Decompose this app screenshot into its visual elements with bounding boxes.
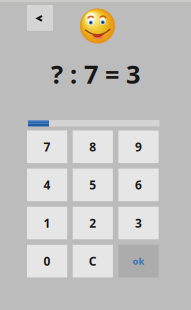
button[interactable]: 9: [118, 130, 159, 163]
staticText: 0: [44, 253, 51, 269]
button[interactable]: 5: [73, 169, 113, 201]
staticText: 2: [89, 215, 96, 231]
button[interactable]: Back: [27, 5, 53, 31]
button[interactable]: 6: [118, 169, 159, 201]
staticText: 3: [135, 215, 142, 231]
staticText: C: [89, 253, 97, 269]
button[interactable]: 7: [27, 130, 67, 163]
button[interactable]: 0: [27, 245, 67, 277]
staticText: 9: [135, 139, 142, 155]
staticText: 7: [44, 139, 51, 155]
button[interactable]: 3: [118, 207, 159, 239]
button[interactable]: 4: [27, 169, 67, 201]
staticText: 6: [135, 177, 142, 193]
button[interactable]: ok: [118, 245, 159, 277]
button[interactable]: 1: [27, 207, 67, 239]
button[interactable]: 8: [73, 130, 113, 163]
staticText: 8: [89, 139, 96, 155]
button[interactable]: C: [73, 245, 113, 277]
staticText: ? : 7 = 3: [51, 57, 140, 91]
staticText: ok: [132, 255, 144, 267]
staticText: 4: [44, 177, 51, 193]
staticText: 5: [89, 177, 96, 193]
button[interactable]: 2: [73, 207, 113, 239]
staticText: 1: [44, 215, 51, 231]
